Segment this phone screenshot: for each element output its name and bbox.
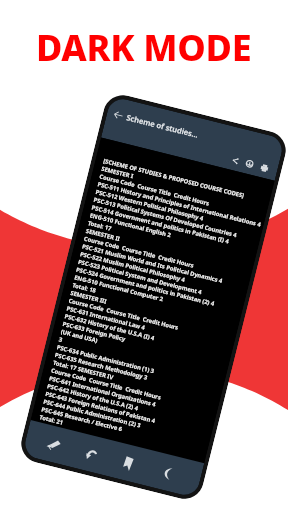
staticText: PSC-644 Public Administration (2) 3 bbox=[42, 398, 141, 430]
staticText: PSC-642 History of the U.S.A (2) 4 bbox=[46, 382, 139, 413]
staticText: Course Code Course Title Credit Hours bbox=[83, 235, 195, 270]
staticText: PSC-631 International Law 4 bbox=[66, 304, 146, 332]
staticText: PSC-645 Research / Elective 6 bbox=[41, 405, 123, 433]
staticText: SEMESTER III bbox=[70, 289, 108, 306]
staticText: Total: 21 bbox=[39, 413, 65, 427]
staticText: Total: 18 bbox=[71, 281, 98, 295]
staticText: PSC-632 History of the U.S.A (I) 4 bbox=[64, 312, 156, 342]
button[interactable]: Highlight bbox=[36, 428, 67, 459]
staticText: Scheme of studies... bbox=[125, 112, 200, 140]
staticText: PSC-643 Foreign Relations of Pakistan 4 bbox=[44, 390, 157, 425]
staticText: PSC-633 Foreign Policy bbox=[62, 320, 127, 343]
staticText: (UK and USA) bbox=[60, 328, 99, 345]
button[interactable]: Download bbox=[240, 155, 259, 173]
staticText: DARK MODE bbox=[36, 23, 252, 72]
button[interactable]: Night mode bbox=[151, 457, 183, 488]
staticText: [SCHEME OF STUDIES & PROPOSED COURSE COD… bbox=[102, 157, 245, 200]
staticText: PSC-522 Muslim Political Philosophy 4 bbox=[79, 250, 186, 284]
staticText: ENG-510 Functional English 2 bbox=[89, 211, 172, 239]
staticText: Course Code Course Title Credit Hours bbox=[99, 172, 210, 208]
staticText: PSC-635 Research Methodology 3 bbox=[54, 351, 148, 382]
staticText: Total: 17 bbox=[87, 219, 113, 233]
staticText: Course Code Course Title Credit Hours bbox=[50, 367, 162, 402]
staticText: PSC-513 Political Systems Of Developed C… bbox=[93, 196, 238, 239]
staticText: PSC-641 International Organizations 4 bbox=[48, 374, 157, 409]
staticText: SEMESTER II bbox=[85, 227, 121, 243]
staticText: PSC-514 Government and politics in Pakis… bbox=[91, 203, 230, 245]
button[interactable]: Bookmark bbox=[112, 447, 144, 478]
staticText: PSC-511 History and Principles of Intern… bbox=[97, 180, 262, 229]
staticText: SEMESTER I bbox=[100, 165, 134, 180]
staticText: PSC-634 Public Administration (1) 3 bbox=[56, 343, 155, 375]
staticText: 3 bbox=[58, 335, 64, 344]
button[interactable]: Print bbox=[255, 158, 273, 176]
button[interactable]: Back bbox=[111, 108, 125, 122]
staticText: PSC-512 Western Political Philosophy 4 bbox=[95, 188, 204, 223]
staticText: ENG-510 Functional Computer 2 bbox=[73, 273, 165, 303]
button[interactable]: Undo bbox=[74, 438, 106, 469]
staticText: PSC-521 Muslim World and Its Political D… bbox=[81, 242, 224, 285]
button[interactable]: Share bbox=[226, 151, 244, 169]
staticText: PSC-523 Political System and Development… bbox=[77, 258, 203, 297]
staticText: Course Code Course Title Credit Hours bbox=[68, 297, 179, 332]
staticText: Total: 17 SEMESTER IV bbox=[52, 359, 114, 382]
staticText: PSC-524 Government and politics in Pakis… bbox=[75, 266, 216, 308]
